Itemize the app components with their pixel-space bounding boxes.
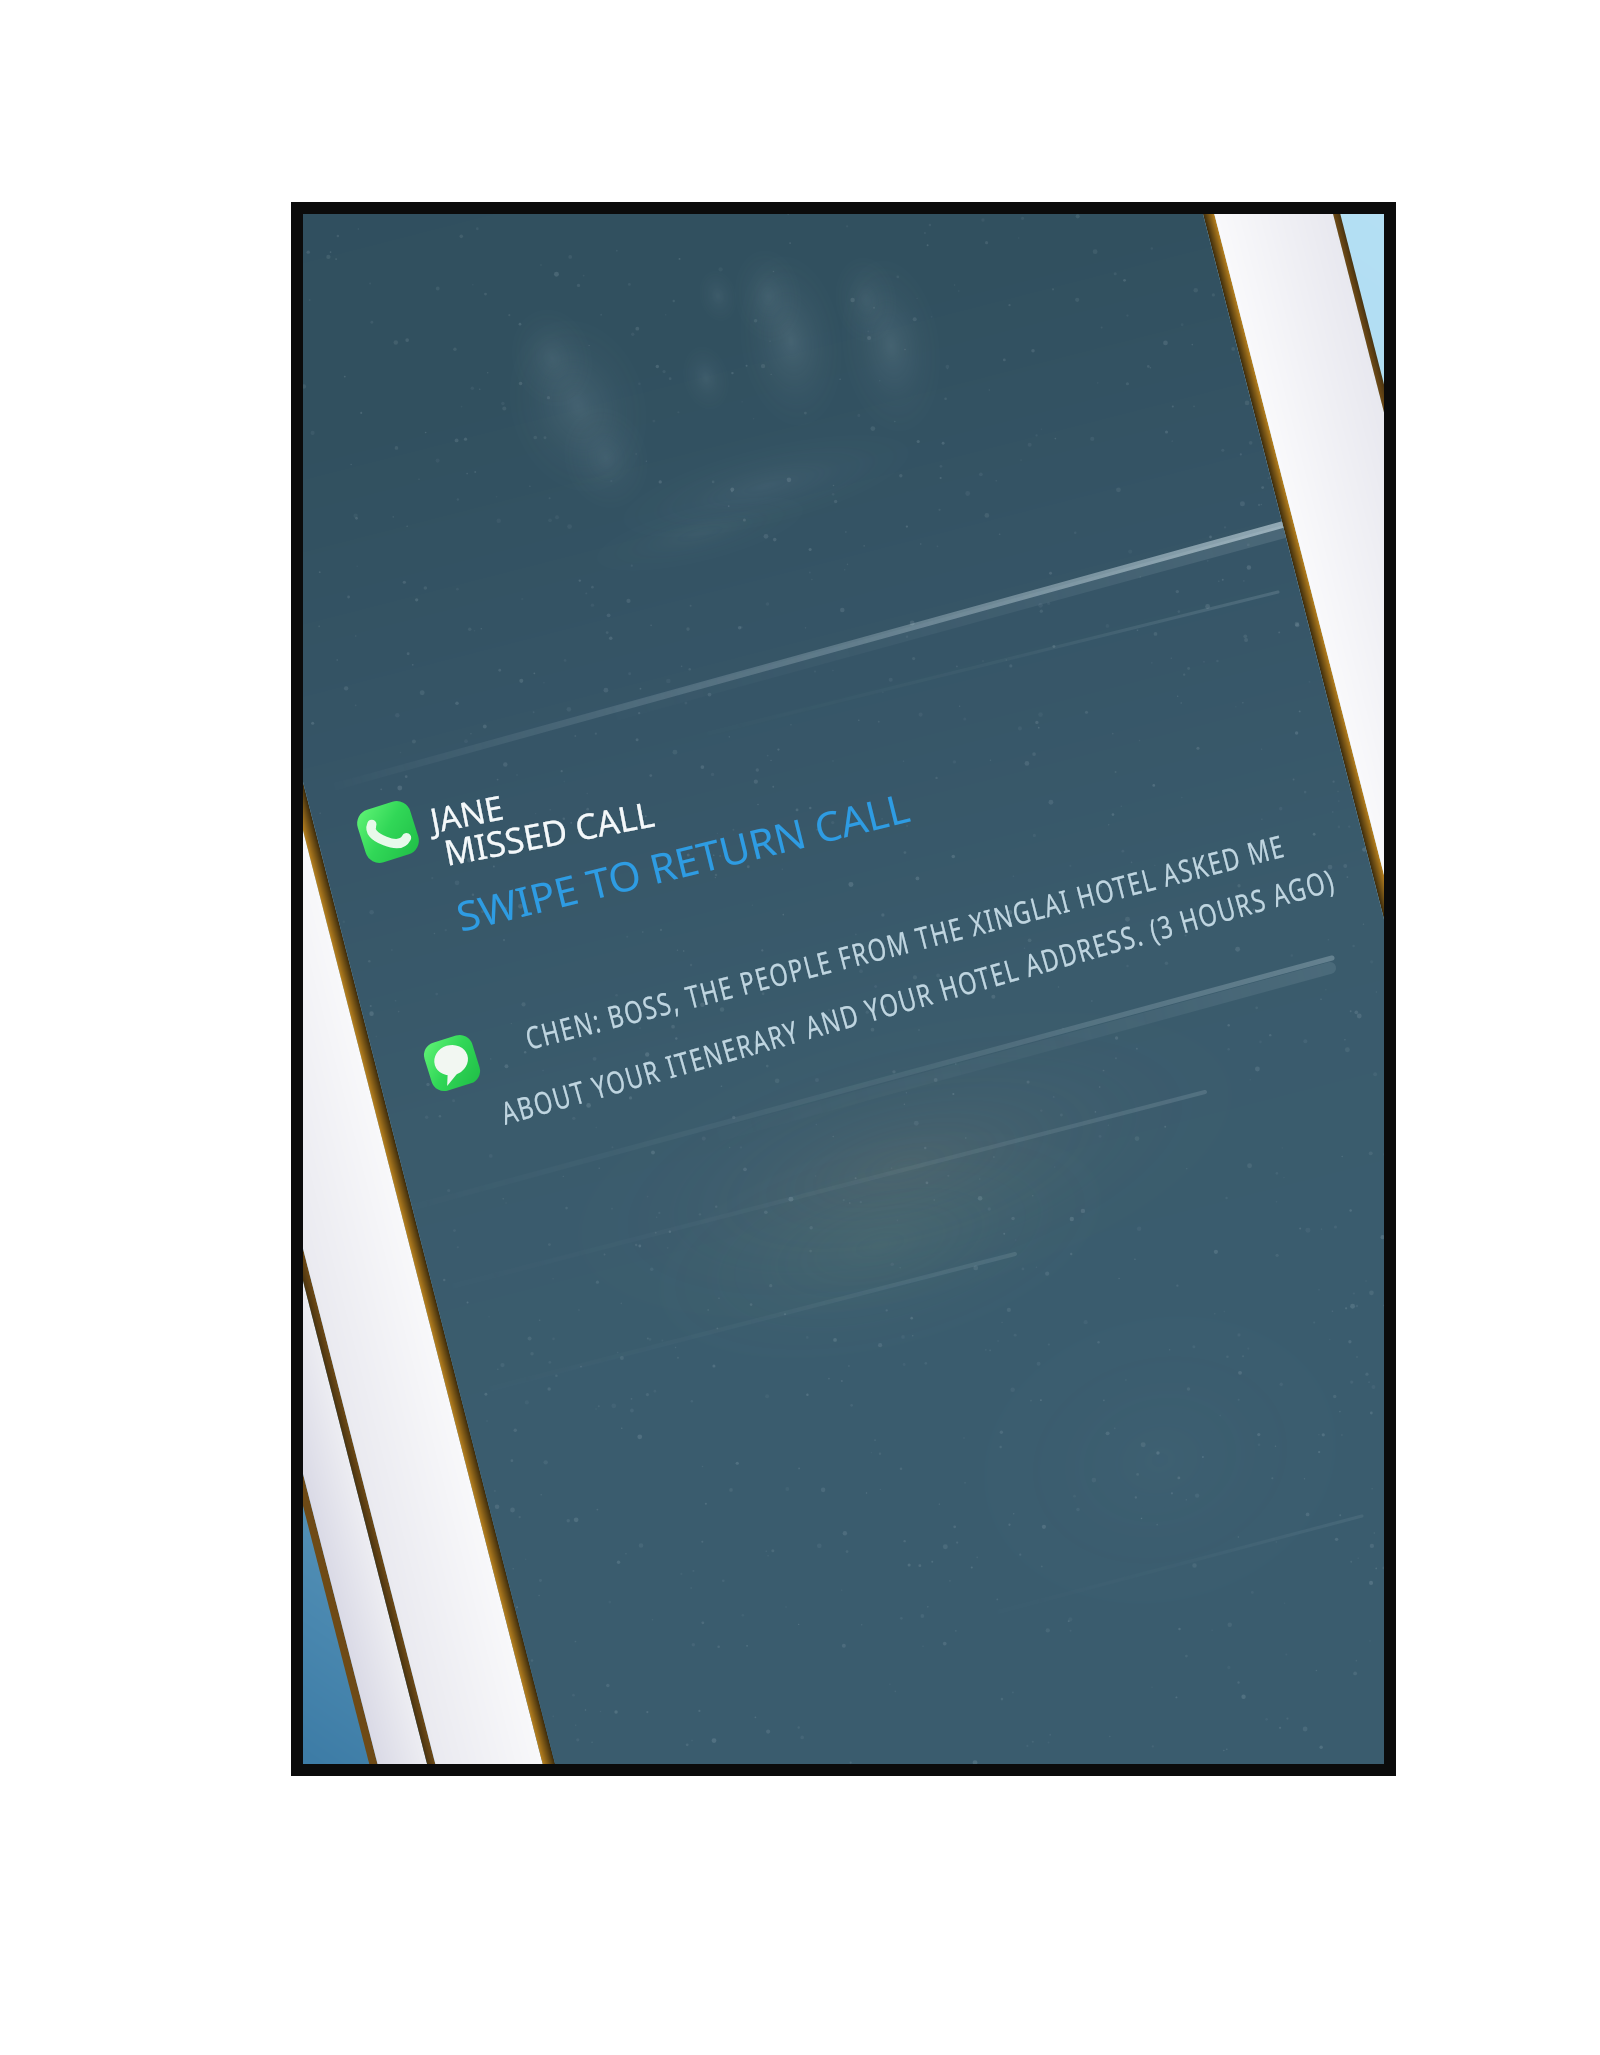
button[interactable]: Jane, missed call. Swipe to return call bbox=[358, 786, 1308, 926]
button[interactable]: Message from Chen, three hours ago bbox=[420, 1005, 1350, 1150]
